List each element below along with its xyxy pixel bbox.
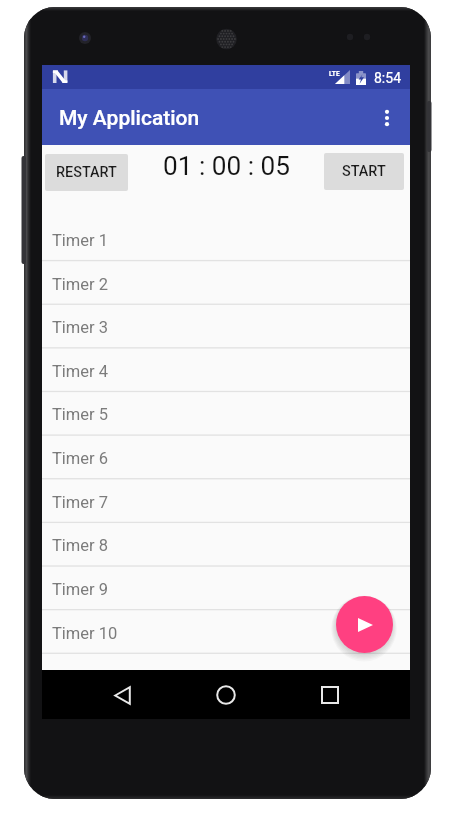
button[interactable]: Home xyxy=(202,671,250,719)
staticText: START xyxy=(342,163,386,180)
staticText: RESTART xyxy=(56,164,117,181)
button[interactable]: Timer 9 xyxy=(42,566,410,610)
button[interactable]: Timer 1 xyxy=(42,217,410,261)
staticText: Timer 3 xyxy=(52,318,109,337)
staticText: 8:54 xyxy=(374,70,401,86)
staticText: Timer 7 xyxy=(52,493,109,512)
button[interactable]: Timer 4 xyxy=(42,348,410,392)
staticText: Timer 2 xyxy=(52,275,109,294)
button[interactable]: Timer 3 xyxy=(42,304,410,348)
staticText: Timer 10 xyxy=(52,624,118,643)
button[interactable]: Timer 5 xyxy=(42,391,410,435)
button[interactable]: Timer 8 xyxy=(42,522,410,566)
button[interactable]: START xyxy=(324,153,404,190)
button[interactable]: Timer 10 xyxy=(42,610,410,654)
button[interactable]: Timer 7 xyxy=(42,479,410,523)
staticText: My Application xyxy=(59,106,200,131)
staticText: LTE xyxy=(329,70,340,78)
staticText: Timer 1 xyxy=(52,231,109,250)
button[interactable]: Timer 6 xyxy=(42,435,410,479)
button[interactable]: More options xyxy=(362,93,410,141)
staticText: Timer 4 xyxy=(52,362,109,381)
staticText: Timer 6 xyxy=(52,449,109,468)
button[interactable]: Timer 2 xyxy=(42,261,410,305)
staticText: Timer 8 xyxy=(52,536,109,555)
staticText: 01 : 00 : 05 xyxy=(163,151,290,182)
staticText: Timer 9 xyxy=(52,580,109,599)
button[interactable]: Back xyxy=(98,671,146,719)
staticText: Timer 5 xyxy=(52,405,109,424)
button[interactable]: RESTART xyxy=(45,154,128,191)
button[interactable]: Recents xyxy=(306,671,354,719)
button[interactable]: Start timer xyxy=(336,596,393,653)
